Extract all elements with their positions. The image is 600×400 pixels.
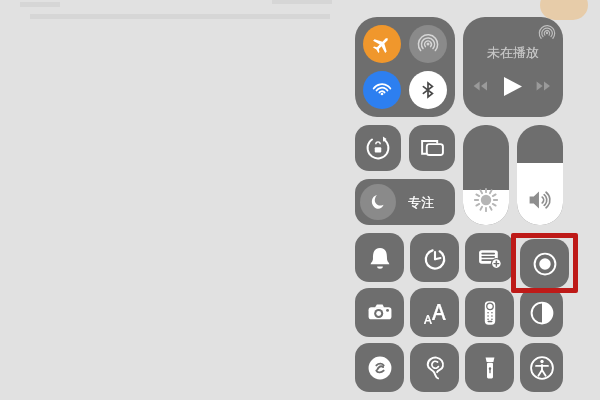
button[interactable]: Hearing (410, 343, 459, 392)
staticText: A (432, 298, 446, 327)
button[interactable]: Timer (410, 233, 459, 282)
button[interactable]: Shazam (355, 343, 404, 392)
button[interactable]: Flashlight (465, 343, 514, 392)
button[interactable]: Next (532, 73, 558, 99)
button[interactable]: Camera (355, 288, 404, 337)
button[interactable]: Airplane mode (363, 25, 401, 63)
button[interactable]: Accessibility (520, 343, 563, 392)
button[interactable]: Wi-Fi (363, 71, 401, 109)
button[interactable]: Now playing (463, 17, 563, 117)
button[interactable]: AirDrop (409, 25, 447, 63)
button[interactable]: Brightness (463, 125, 509, 225)
button[interactable]: 专注 (355, 179, 455, 225)
button[interactable]: Bluetooth (409, 71, 447, 109)
button[interactable]: Previous (469, 73, 495, 99)
button[interactable]: Rotation lock (355, 125, 401, 171)
button[interactable]: Screen recording highlighted (520, 239, 569, 288)
button[interactable]: Text size (410, 288, 459, 337)
button[interactable]: Play (500, 73, 526, 99)
button[interactable]: Volume (517, 125, 563, 225)
button[interactable]: Dark mode (520, 288, 563, 337)
button[interactable]: Apple TV Remote (465, 288, 514, 337)
staticText: A (424, 311, 432, 327)
staticText: 专注 (408, 194, 434, 210)
button[interactable]: Quick note (465, 233, 514, 282)
staticText: 未在播放 (487, 44, 539, 60)
button[interactable]: Screen mirroring (409, 125, 455, 171)
button[interactable]: Connectivity (355, 17, 455, 117)
button[interactable]: Silent mode (355, 233, 404, 282)
button[interactable]: Screen recording (520, 233, 563, 282)
